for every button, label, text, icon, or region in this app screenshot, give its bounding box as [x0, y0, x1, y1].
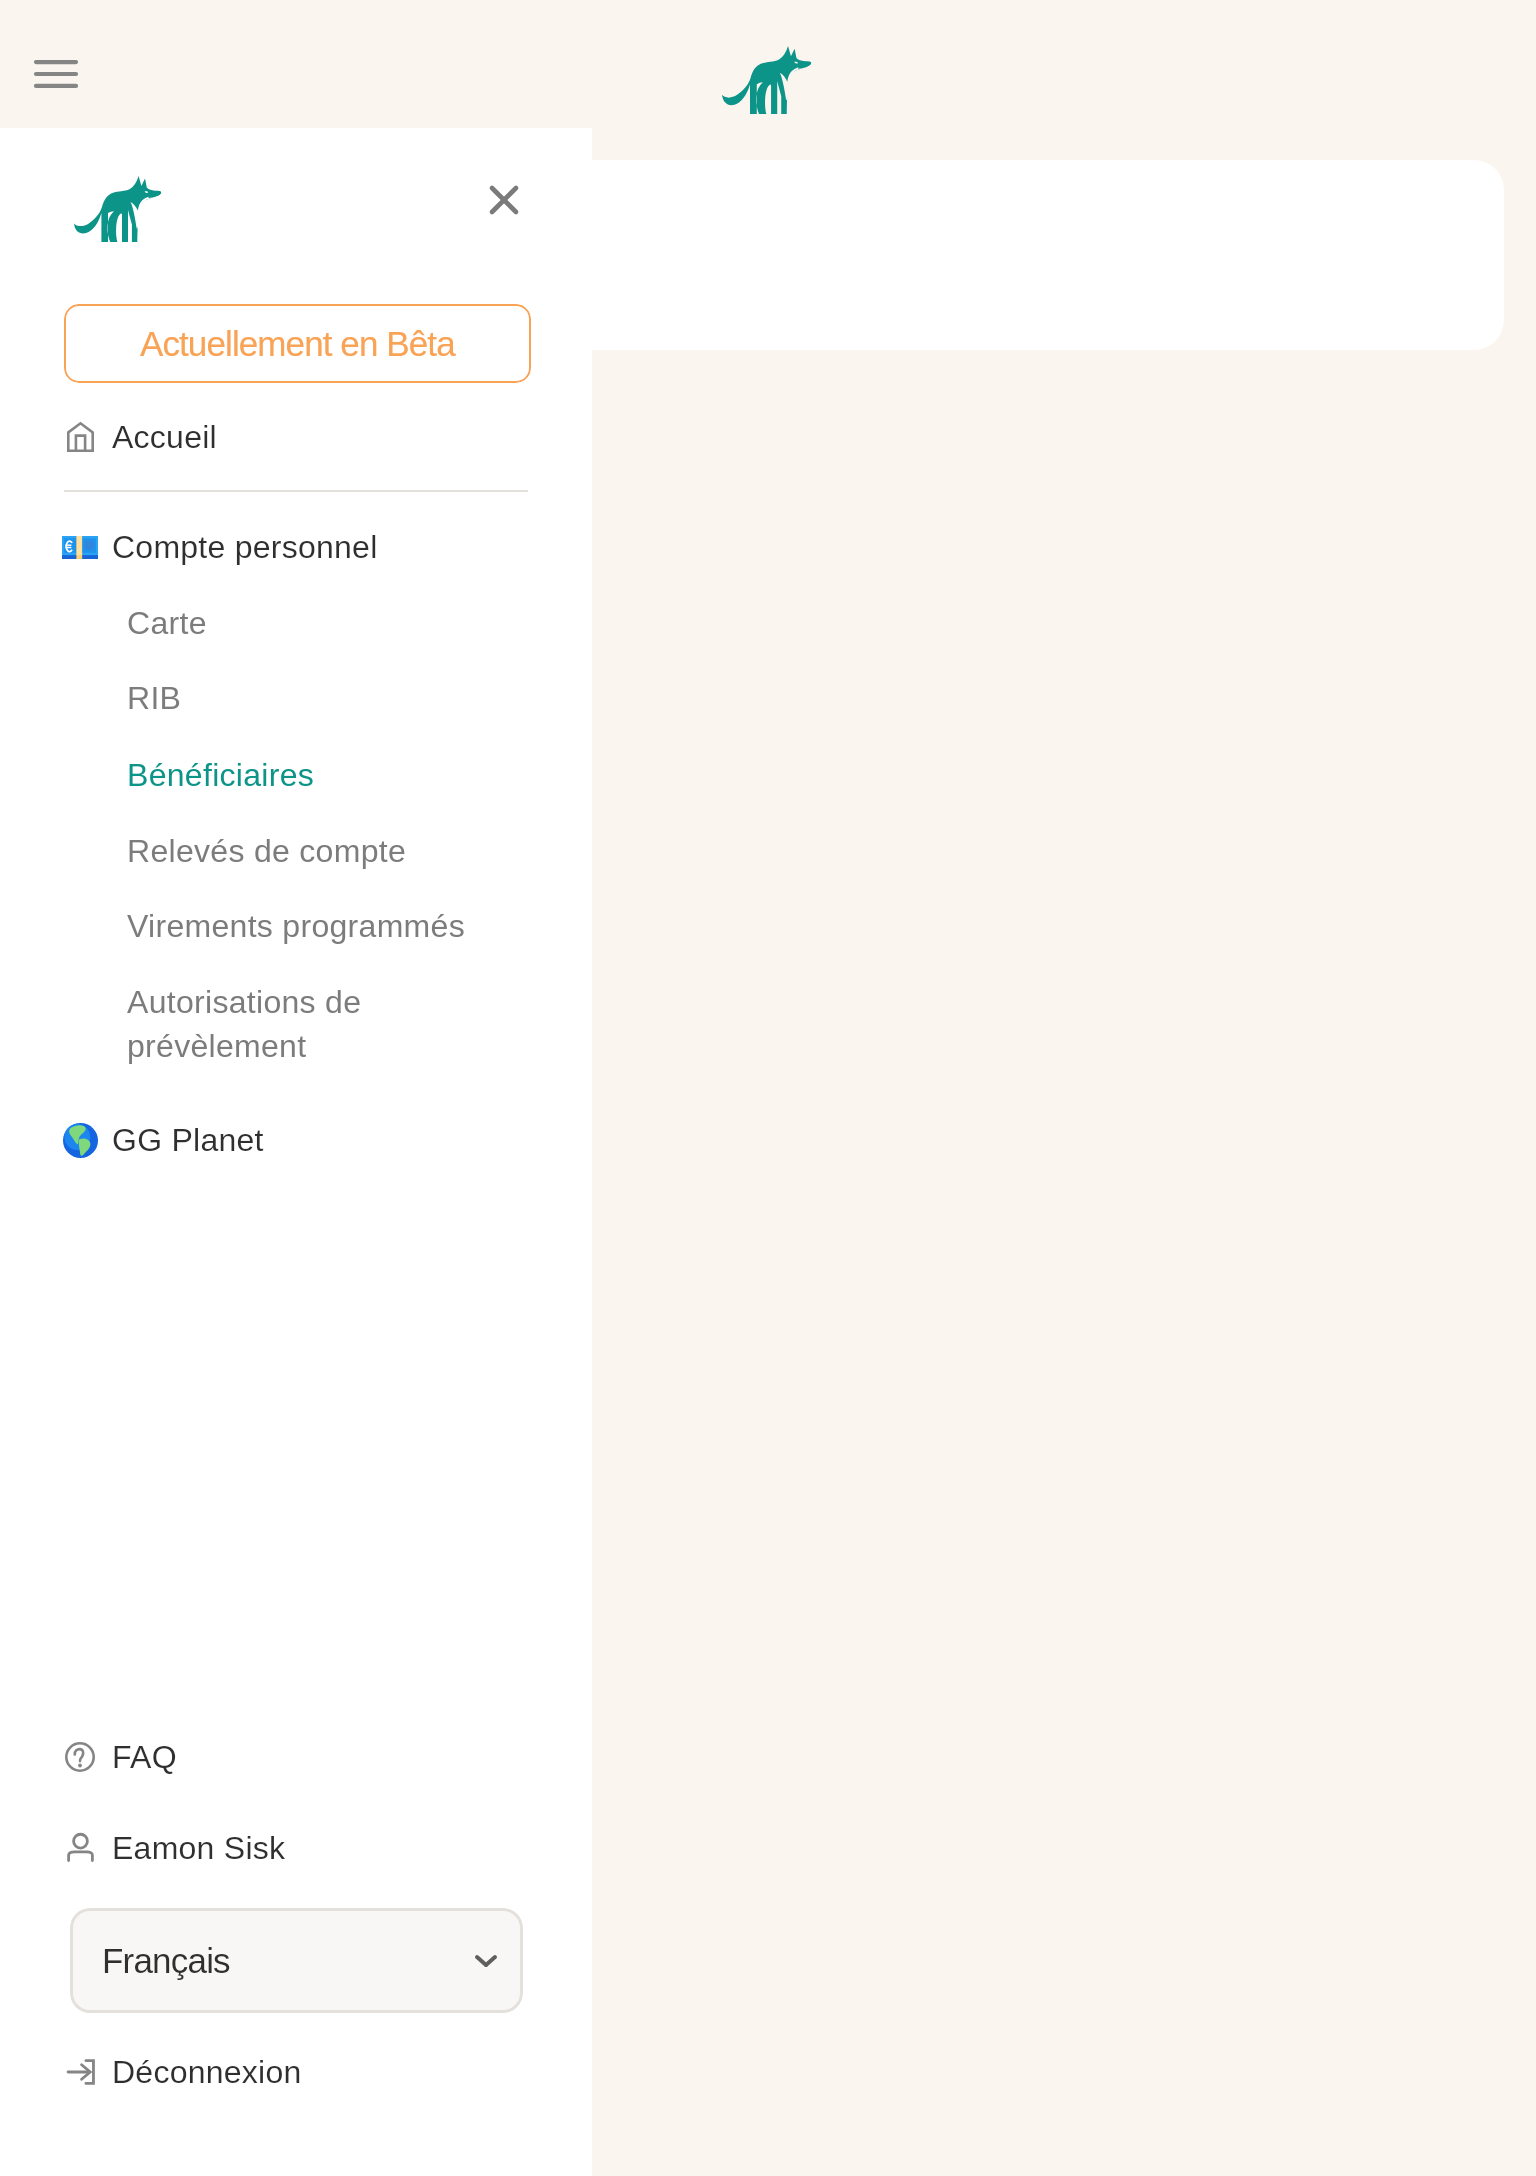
button[interactable]: Close navigation menu: [468, 164, 540, 236]
staticText: Carte: [127, 605, 207, 641]
staticText: Actuellement en Bêta: [140, 324, 455, 363]
button[interactable]: Actuellement en Bêta: [64, 304, 531, 383]
staticText: Bénéficiaires: [127, 757, 315, 793]
button[interactable]: Relevés de compte: [0, 829, 592, 873]
button[interactable]: Déconnexion: [0, 2043, 592, 2101]
staticText: Déconnexion: [112, 2054, 302, 2090]
staticText: Virements programmés: [127, 908, 465, 944]
button[interactable]: Accueil: [0, 408, 592, 466]
button[interactable]: Autorisations de prévèlement: [0, 980, 592, 1068]
button[interactable]: Carte: [0, 601, 592, 645]
staticText: GG Planet: [112, 1122, 264, 1158]
staticText: Français: [102, 1941, 230, 1980]
staticText: Relevés de compte: [127, 833, 407, 869]
staticText: Compte personnel: [112, 529, 378, 565]
button[interactable]: RIB: [0, 676, 592, 720]
staticText: FAQ: [112, 1739, 177, 1775]
staticText: RIB: [127, 680, 182, 716]
button[interactable]: Compte personnel: [0, 518, 592, 576]
staticText: Accueil: [112, 419, 217, 455]
staticText: Autorisations de prévèlement: [127, 984, 362, 1064]
button[interactable]: FAQ: [0, 1728, 592, 1786]
button[interactable]: Bénéficiaires: [0, 753, 592, 797]
button[interactable]: Virements programmés: [0, 904, 592, 948]
button[interactable]: GG Planet: [0, 1111, 592, 1169]
button[interactable]: Eamon Sisk: [0, 1819, 592, 1877]
staticText: Eamon Sisk: [112, 1830, 286, 1866]
button[interactable]: Open navigation menu: [18, 38, 94, 110]
button[interactable]: Français: [70, 1908, 523, 2013]
